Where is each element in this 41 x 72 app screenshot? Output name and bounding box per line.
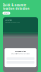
button[interactable]: Start bbox=[2, 12, 10, 15]
staticText: Find places near you bbox=[5, 22, 20, 23]
staticText: Enable location bbox=[15, 50, 26, 52]
staticText: Location bbox=[5, 19, 12, 21]
staticText: Start bbox=[4, 12, 9, 14]
staticText: location detection bbox=[2, 7, 29, 10]
staticText: Quick & accurate bbox=[2, 3, 26, 7]
staticText: We use it to find nearby stops bbox=[11, 53, 30, 55]
